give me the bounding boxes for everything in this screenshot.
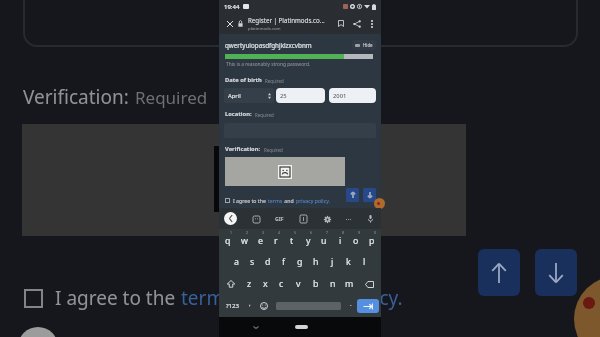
staticText: q <box>225 235 231 247</box>
button[interactable]: n <box>324 273 341 295</box>
button[interactable]: d <box>260 251 276 273</box>
staticText: Date of birth <box>225 76 262 84</box>
staticText: This is a reasonably strong password. <box>226 61 311 68</box>
button[interactable]: Clipboard <box>298 214 308 224</box>
button[interactable]: I agree to the <box>225 197 331 204</box>
staticText: privacy policy. <box>278 285 403 311</box>
button[interactable]: 5 <box>284 229 300 251</box>
button[interactable]: v <box>290 273 307 295</box>
button[interactable]: 7 <box>316 229 332 251</box>
button[interactable]: Scroll down <box>363 188 376 202</box>
button[interactable]: 4 <box>268 229 284 251</box>
staticText: r <box>274 235 278 247</box>
staticText: Register | Platinmods.co... <box>248 16 325 24</box>
staticText: w <box>241 235 248 247</box>
staticText: . <box>350 300 352 308</box>
staticText: i <box>339 235 342 247</box>
button[interactable]: ?123 <box>221 295 243 317</box>
button[interactable]: Voice input <box>365 214 375 224</box>
staticText: 25 <box>280 92 287 100</box>
staticText: e <box>258 235 263 247</box>
staticText: 19:44 <box>224 3 240 11</box>
staticText: Hide <box>363 42 373 48</box>
button[interactable]: Hide <box>355 42 373 48</box>
button[interactable]: x <box>257 273 273 295</box>
staticText: p <box>369 235 375 247</box>
staticText: 0 <box>374 230 376 235</box>
button[interactable]: Scroll down <box>535 249 577 296</box>
button[interactable]: More options <box>366 18 377 29</box>
button[interactable]: Emoji <box>257 295 271 317</box>
button[interactable]: Backspace <box>358 273 380 295</box>
button[interactable]: 8 <box>332 229 348 251</box>
button[interactable]: Settings <box>322 214 332 224</box>
button[interactable]: g <box>292 251 308 273</box>
staticText: Verification: <box>23 84 129 110</box>
button[interactable]: s <box>244 251 260 273</box>
button[interactable]: 2001 <box>329 88 376 103</box>
button[interactable]: m <box>341 273 358 295</box>
staticText: qwertyuiopasdfghjklzxcvbnm <box>225 41 352 50</box>
button[interactable]: 0 <box>364 229 380 251</box>
button[interactable]: c <box>273 273 290 295</box>
staticText: j <box>331 256 334 268</box>
button[interactable]: 6 <box>300 229 316 251</box>
staticText: 8 <box>342 230 344 235</box>
button[interactable]: . <box>345 295 357 317</box>
staticText: Verification: <box>225 145 261 153</box>
staticText: s <box>250 256 255 268</box>
button[interactable]: , <box>243 295 257 317</box>
button[interactable]: More <box>346 214 351 224</box>
staticText: 2 <box>246 230 248 235</box>
staticText: Required <box>264 147 283 153</box>
button[interactable]: Stickers <box>251 214 261 224</box>
button[interactable]: 25 <box>276 88 325 103</box>
staticText: c <box>279 278 284 290</box>
button[interactable]: 3 <box>252 229 268 251</box>
staticText: b <box>313 278 319 290</box>
button[interactable]: f <box>276 251 292 273</box>
staticText: l <box>363 256 366 268</box>
staticText: Location: <box>225 110 252 118</box>
staticText: n <box>330 278 336 290</box>
button[interactable]: April <box>224 88 274 103</box>
button[interactable]: 9 <box>348 229 364 251</box>
staticText: a <box>234 256 239 268</box>
staticText: h <box>313 256 319 268</box>
button[interactable]: z <box>241 273 257 295</box>
staticText: g <box>297 256 303 268</box>
staticText: Required <box>135 86 208 109</box>
button[interactable]: h <box>308 251 324 273</box>
staticText: I agree to the <box>55 285 181 311</box>
button[interactable]: Scroll up <box>346 188 359 202</box>
button[interactable]: Bookmark <box>335 18 346 29</box>
staticText: 9 <box>358 230 360 235</box>
button[interactable]: l <box>356 251 372 273</box>
staticText: GIF <box>275 215 284 222</box>
staticText: v <box>296 278 301 290</box>
button[interactable]: Hide keyboard <box>250 322 261 333</box>
staticText: privacy policy. <box>296 197 331 204</box>
button[interactable]: k <box>340 251 356 273</box>
staticText: and <box>283 197 296 204</box>
button[interactable]: Close <box>224 18 235 29</box>
button[interactable]: 1 <box>220 229 236 251</box>
button[interactable]: I agree to the <box>24 285 403 311</box>
button[interactable]: a <box>228 251 244 273</box>
staticText: platinmods.com <box>248 25 281 31</box>
button[interactable]: b <box>307 273 324 295</box>
button[interactable]: Share <box>351 18 362 29</box>
staticText: t <box>290 235 294 247</box>
staticText: 7 <box>326 230 328 235</box>
button[interactable]: j <box>324 251 340 273</box>
button[interactable]: 2 <box>236 229 252 251</box>
staticText: ?123 <box>226 302 239 310</box>
button[interactable]: Back <box>224 212 237 225</box>
button[interactable]: Scroll up <box>478 249 520 296</box>
button[interactable]: Enter <box>357 299 379 313</box>
staticText: k <box>346 256 351 268</box>
staticText: and <box>234 285 278 311</box>
button[interactable]: Shift <box>220 273 241 295</box>
